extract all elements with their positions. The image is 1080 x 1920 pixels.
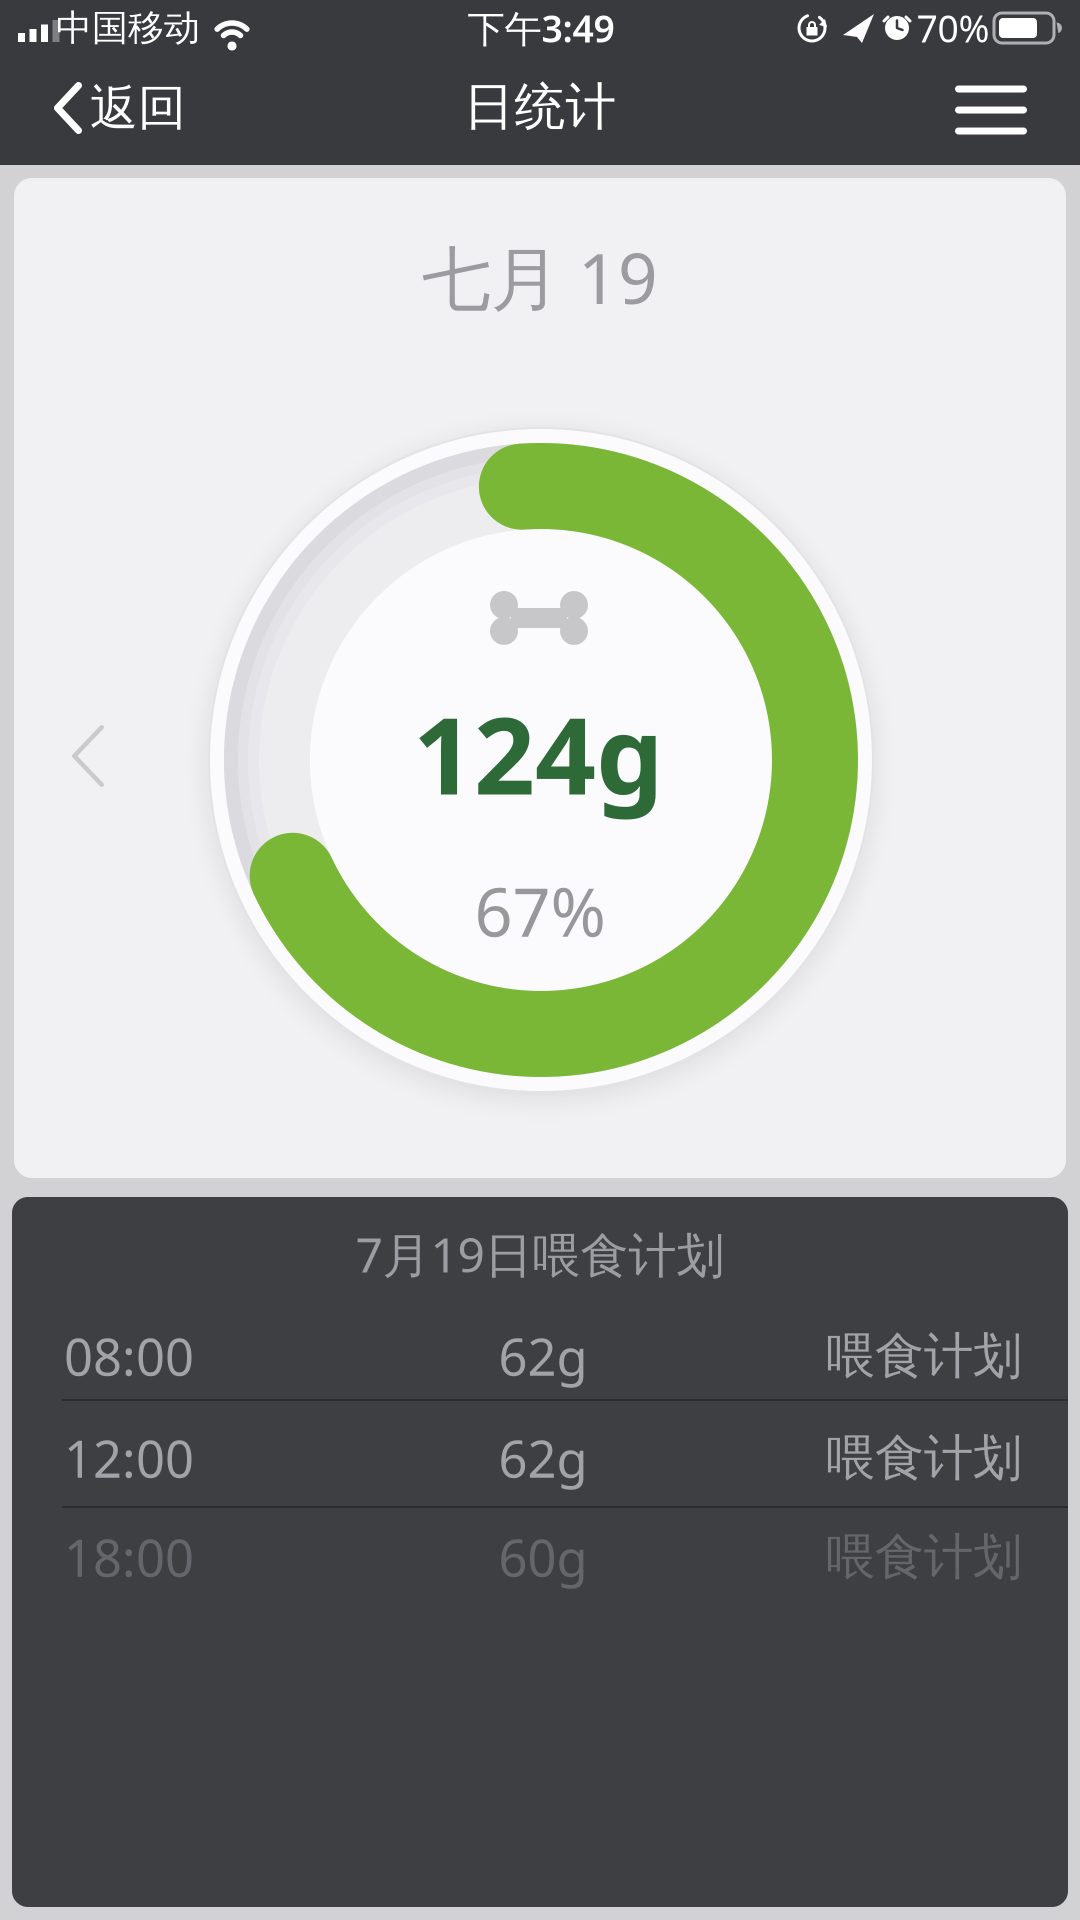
staticText: 18:00	[64, 1523, 194, 1591]
staticText: 喂食计划	[826, 1527, 1022, 1587]
button[interactable]: 返回	[54, 78, 186, 137]
staticText: 08:00	[64, 1322, 194, 1390]
staticText: 70%	[916, 3, 989, 53]
staticText: 中国移动	[56, 6, 200, 50]
staticText: 62g	[498, 1322, 587, 1390]
staticText: 喂食计划	[826, 1326, 1022, 1386]
staticText: 返回	[90, 78, 186, 137]
staticText: 下午3:49	[467, 3, 614, 53]
staticText: 日统计	[463, 76, 616, 138]
button[interactable]: 12:00	[64, 1410, 1022, 1506]
button[interactable]: 菜单	[955, 85, 1027, 134]
staticText: 喂食计划	[826, 1428, 1022, 1488]
button[interactable]: 18:00	[64, 1509, 1022, 1605]
staticText: 124g	[413, 682, 663, 824]
staticText: 七月 19	[422, 231, 658, 323]
staticText: 60g	[498, 1523, 587, 1591]
staticText: 62g	[498, 1424, 587, 1492]
staticText: 7月19日喂食计划	[355, 1222, 724, 1286]
staticText: 67%	[474, 867, 605, 955]
staticText: 12:00	[64, 1424, 194, 1492]
button[interactable]: 08:00	[64, 1308, 1022, 1404]
button[interactable]: 前一天	[72, 725, 104, 787]
